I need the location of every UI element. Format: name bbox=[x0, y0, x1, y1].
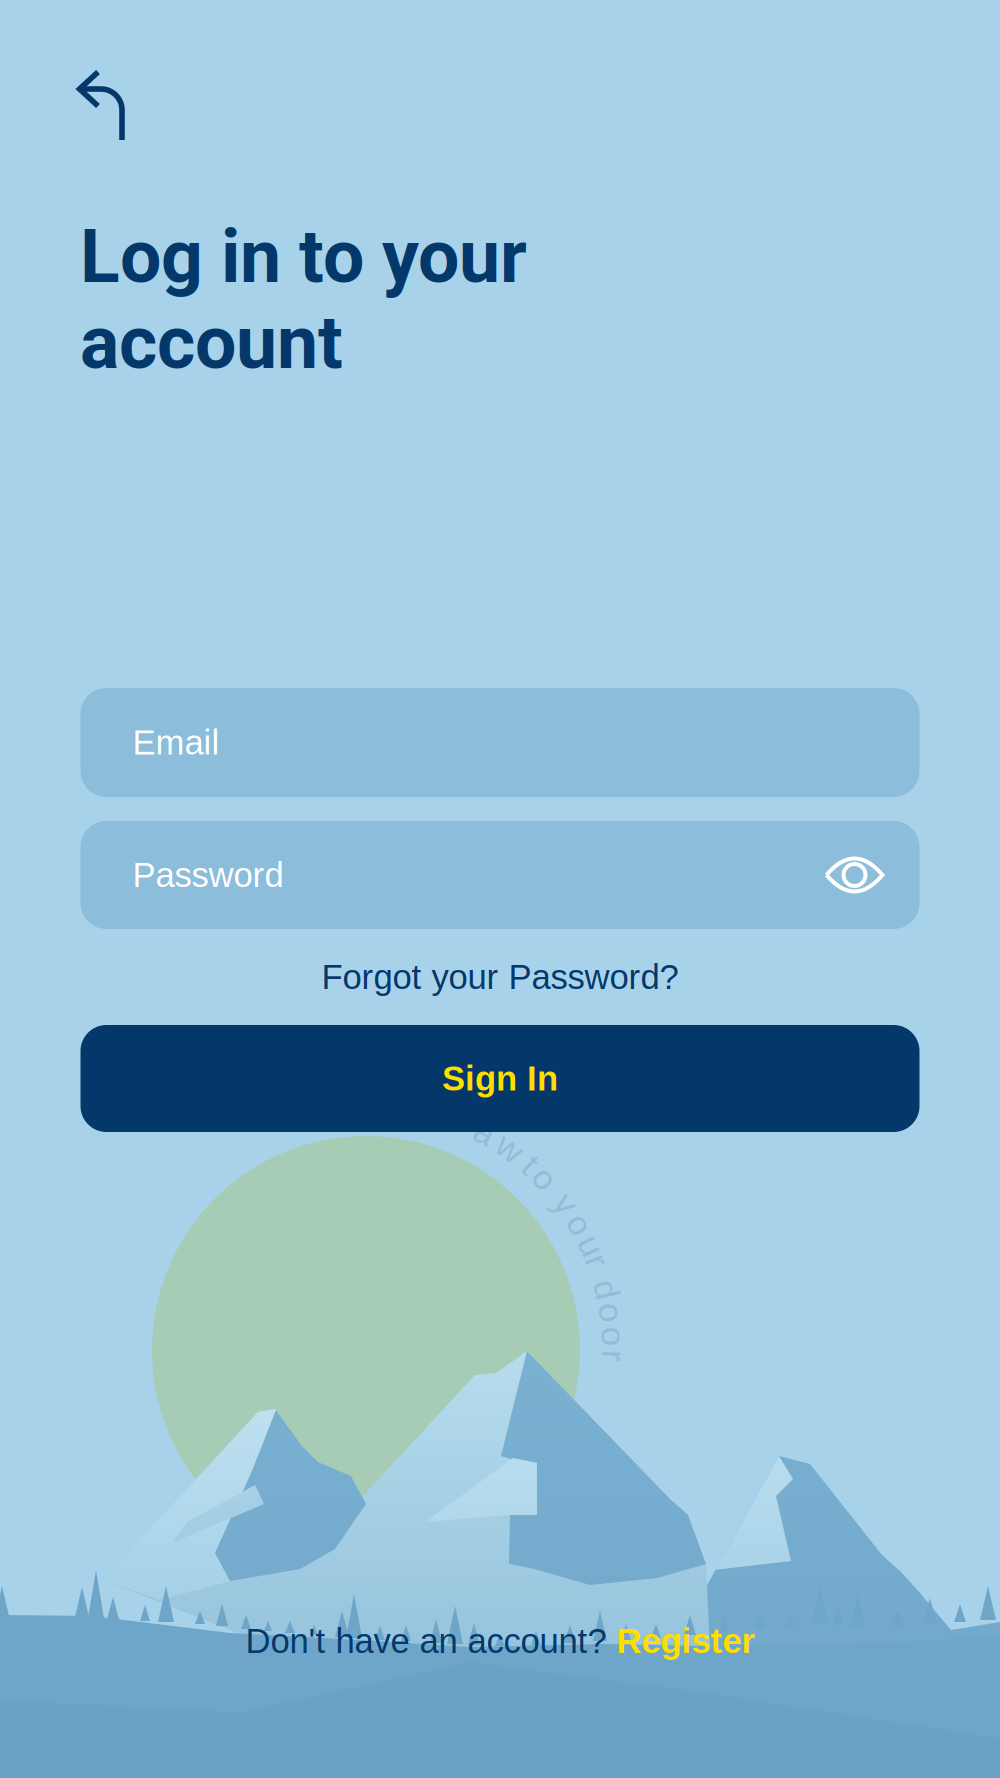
staticText: u bbox=[581, 1226, 600, 1265]
staticText: Register bbox=[616, 1622, 754, 1660]
button[interactable]: Register bbox=[616, 1622, 754, 1660]
staticText: Don't have an account? bbox=[245, 1622, 616, 1660]
staticText: Email bbox=[132, 723, 219, 762]
staticText: Sign In bbox=[442, 1059, 558, 1098]
staticText: y bbox=[557, 1184, 574, 1222]
button[interactable]: Back bbox=[0, 0, 152, 165]
staticText: r bbox=[591, 1241, 603, 1280]
staticText: Forgot your Password? bbox=[321, 958, 678, 996]
button[interactable]: Sign In bbox=[80, 1025, 919, 1132]
staticText: o bbox=[602, 1293, 621, 1331]
staticText: r bbox=[608, 1337, 620, 1375]
staticText: Password bbox=[132, 856, 283, 894]
button[interactable]: Email bbox=[80, 688, 919, 797]
button[interactable]: Password bbox=[80, 821, 919, 929]
staticText: o bbox=[604, 1317, 623, 1355]
staticText: w bbox=[497, 1129, 522, 1167]
staticText: d bbox=[597, 1270, 616, 1308]
staticText: r bbox=[441, 1096, 453, 1135]
button[interactable]: Forgot your Password? bbox=[321, 929, 678, 1025]
staticText: o bbox=[535, 1158, 554, 1197]
staticText: t bbox=[526, 1145, 536, 1184]
staticText: o bbox=[570, 1205, 589, 1243]
staticText: Log in to your account bbox=[80, 214, 527, 386]
staticText: a bbox=[475, 1113, 494, 1152]
